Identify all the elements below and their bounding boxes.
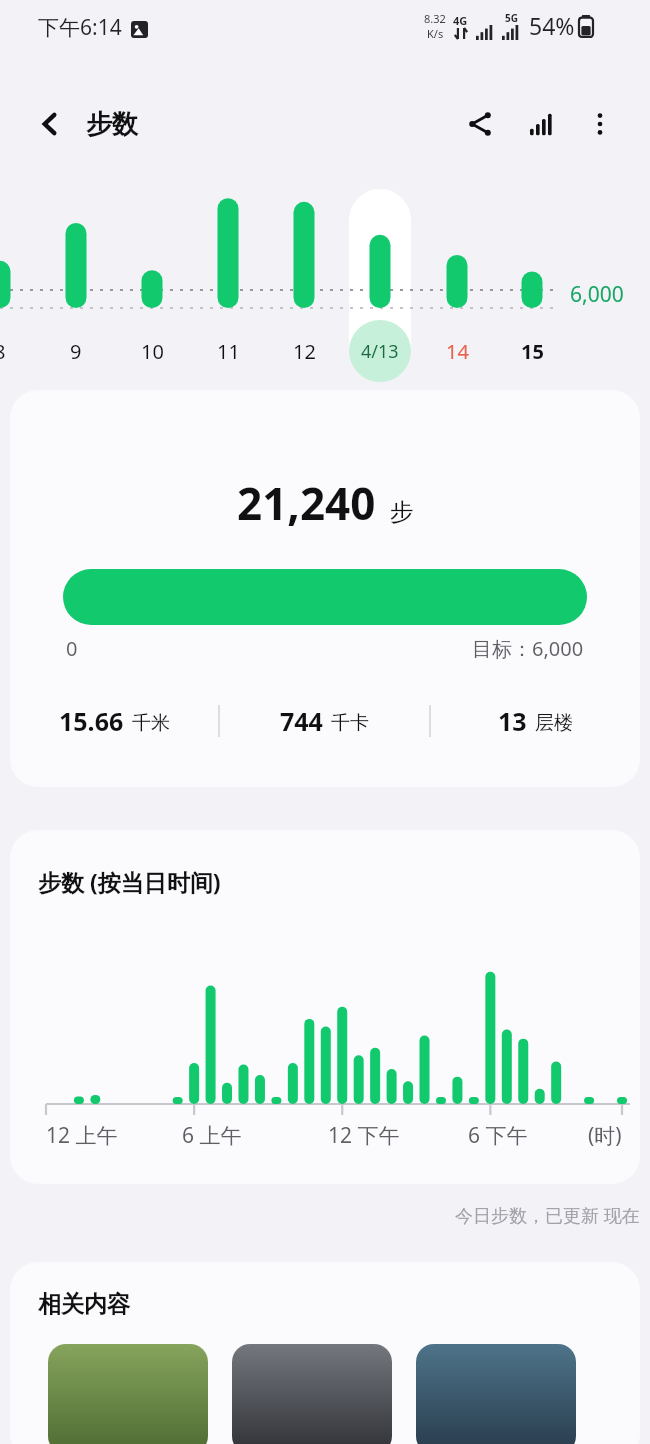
button[interactable]: 步数 xyxy=(86,108,138,141)
button[interactable]: 9 xyxy=(45,330,107,372)
staticText: 6 上午 xyxy=(182,1121,242,1150)
button[interactable] xyxy=(349,189,411,379)
staticText: 4/13 xyxy=(361,339,399,364)
staticText: 21,240 xyxy=(237,473,376,533)
staticText: 步数 xyxy=(86,108,138,141)
staticText: (时) xyxy=(588,1121,622,1150)
button[interactable]: 15.66 xyxy=(10,704,218,738)
button[interactable]: More options xyxy=(572,96,628,152)
staticText: 相关内容 xyxy=(38,1290,130,1319)
staticText: K/s xyxy=(427,26,444,41)
staticText: 54% xyxy=(529,10,575,41)
staticText: 千米 xyxy=(132,711,170,735)
button[interactable]: 8 xyxy=(0,330,31,372)
button[interactable]: 12 xyxy=(273,330,335,372)
staticText: 15 xyxy=(521,338,544,365)
staticText: 步数 (按当日时间) xyxy=(38,866,221,897)
staticText: 12 下午 xyxy=(328,1121,400,1150)
button[interactable]: Related article xyxy=(48,1344,208,1444)
button[interactable]: Related article xyxy=(232,1344,392,1444)
button[interactable]: Trends xyxy=(514,96,570,152)
staticText: 8 xyxy=(0,338,6,365)
button[interactable]: Share xyxy=(452,96,508,152)
button[interactable]: 13 xyxy=(431,704,640,738)
staticText: 层楼 xyxy=(535,711,573,735)
button[interactable]: 步数 (按当日时间) xyxy=(10,830,640,1184)
staticText: 0 xyxy=(66,635,78,662)
staticText: 6,000 xyxy=(570,280,624,309)
staticText: 6 下午 xyxy=(468,1121,528,1150)
button[interactable]: 4/13 xyxy=(349,320,411,382)
staticText: 8.32 xyxy=(424,11,446,26)
staticText: 5G xyxy=(505,11,518,25)
staticText: 10 xyxy=(141,338,164,365)
staticText: 步 xyxy=(390,497,414,527)
staticText: 千卡 xyxy=(331,711,369,735)
button[interactable]: 15 xyxy=(501,330,563,372)
button[interactable]: 21,240 xyxy=(10,390,640,787)
button[interactable]: 10 xyxy=(121,330,183,372)
staticText: 11 xyxy=(217,338,240,365)
staticText: 744 xyxy=(280,704,323,738)
button[interactable]: 14 xyxy=(426,330,488,372)
staticText: 9 xyxy=(70,338,82,365)
staticText: 13 xyxy=(498,704,527,738)
button[interactable]: Related article xyxy=(416,1344,576,1444)
staticText: 14 xyxy=(446,338,469,365)
staticText: 目标：6,000 xyxy=(472,635,584,662)
staticText: 15.66 xyxy=(59,704,124,738)
button[interactable]: 744 xyxy=(220,704,429,738)
staticText: 12 xyxy=(293,338,316,365)
staticText: 4G xyxy=(453,13,468,28)
button[interactable]: Back xyxy=(22,96,78,152)
staticText: 12 上午 xyxy=(46,1121,118,1150)
button[interactable]: 11 xyxy=(197,330,259,372)
staticText: 下午6:14 xyxy=(38,13,122,42)
staticText: 今日步数，已更新 现在 xyxy=(455,1203,640,1228)
